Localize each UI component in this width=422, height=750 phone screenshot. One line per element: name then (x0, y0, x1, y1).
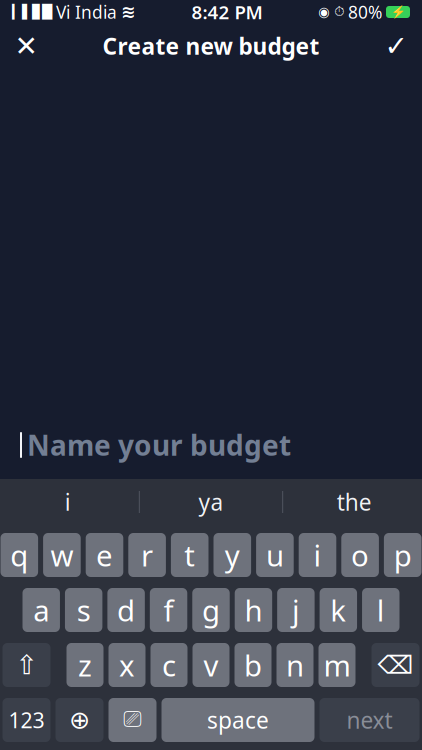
staticText: b (244, 645, 262, 684)
staticText: i (313, 535, 321, 574)
staticText: z (78, 645, 92, 684)
staticText: space (207, 705, 269, 735)
button[interactable]: space (161, 698, 314, 742)
staticText: ✓ (384, 30, 407, 62)
button[interactable]: v (192, 643, 229, 687)
staticText: n (286, 645, 304, 684)
button[interactable]: n (276, 643, 313, 687)
button[interactable]: Delete (371, 643, 419, 687)
staticText: Create new budget (102, 31, 319, 61)
button[interactable]: r (128, 533, 166, 577)
staticText: next (346, 705, 392, 735)
button[interactable]: Numbers (2, 698, 50, 742)
button[interactable]: i (299, 533, 336, 577)
staticText: u (266, 535, 284, 574)
button[interactable]: z (66, 643, 103, 687)
button[interactable]: j (277, 588, 315, 632)
staticText: ya (198, 487, 223, 517)
staticText: l (377, 590, 385, 629)
staticText: ⇧ (15, 650, 37, 680)
staticText: g (202, 590, 220, 629)
button[interactable]: i (0, 479, 139, 525)
button[interactable]: the (283, 479, 422, 525)
staticText: y (225, 535, 240, 574)
button[interactable]: y (213, 533, 251, 577)
staticText: 80% (348, 0, 382, 23)
button[interactable]: e (86, 533, 123, 577)
button[interactable]: s (65, 588, 102, 632)
staticText: ⚡ (390, 5, 405, 19)
button[interactable]: ya (140, 479, 282, 525)
staticText: m (323, 645, 350, 684)
staticText: w (50, 535, 73, 574)
staticText: ⎚ (123, 709, 141, 731)
button[interactable]: q (0, 533, 38, 577)
staticText: q (10, 535, 28, 574)
staticText: j (292, 590, 300, 629)
button[interactable]: k (320, 588, 357, 632)
staticText: x (119, 645, 135, 684)
button[interactable]: c (150, 643, 187, 687)
staticText: c (162, 645, 176, 684)
button[interactable]: p (384, 533, 421, 577)
staticText: ▎▌▊█ (12, 4, 52, 19)
staticText: o (351, 535, 369, 574)
staticText: d (117, 590, 135, 629)
staticText: k (330, 590, 346, 629)
button[interactable]: o (341, 533, 379, 577)
button[interactable]: f (150, 588, 187, 632)
staticText: the (337, 487, 372, 517)
button[interactable]: b (234, 643, 271, 687)
button[interactable]: Next keyboard (55, 698, 103, 742)
button[interactable]: x (108, 643, 145, 687)
button[interactable]: w (43, 533, 81, 577)
button[interactable]: Save (370, 24, 422, 68)
staticText: 123 (8, 706, 44, 734)
staticText: Vi India (56, 0, 117, 23)
staticText: Name your budget (27, 426, 291, 464)
staticText: t (184, 535, 195, 574)
staticText: ⏱ (334, 5, 344, 18)
button[interactable]: m (318, 643, 355, 687)
button[interactable]: g (192, 588, 230, 632)
staticText: ✕ (14, 30, 37, 62)
staticText: r (141, 535, 153, 574)
staticText: s (77, 590, 91, 629)
staticText: a (33, 590, 49, 629)
button[interactable]: h (235, 588, 272, 632)
staticText: ⊕ (69, 706, 90, 734)
staticText: ◉ (318, 4, 330, 19)
button[interactable]: Shift (2, 643, 50, 687)
staticText: h (244, 590, 262, 629)
button[interactable]: u (256, 533, 294, 577)
staticText: v (203, 645, 218, 684)
button[interactable]: next (319, 698, 419, 742)
staticText: ⌫ (377, 651, 413, 679)
button[interactable]: a (22, 588, 60, 632)
staticText: e (96, 535, 113, 574)
button[interactable]: Dictation (108, 698, 156, 742)
button[interactable]: t (171, 533, 208, 577)
staticText: ≋ (121, 2, 136, 22)
staticText: 8:42 PM (191, 0, 262, 24)
button[interactable]: Close (0, 24, 52, 68)
staticText: p (394, 535, 412, 574)
staticText: i (65, 487, 71, 517)
staticText: f (164, 590, 174, 629)
button[interactable]: l (362, 588, 399, 632)
button[interactable]: d (107, 588, 145, 632)
